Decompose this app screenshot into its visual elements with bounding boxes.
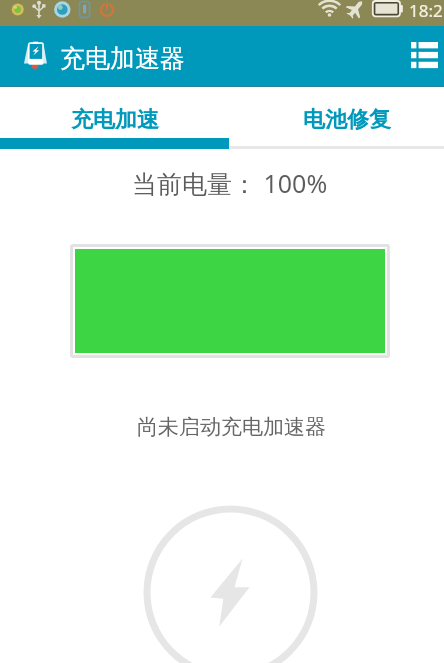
button[interactable]: Menu	[404, 36, 444, 76]
button[interactable]: Start charging booster	[143, 505, 318, 663]
staticText: 充电加速器	[60, 43, 185, 74]
button[interactable]: 充电加速	[0, 87, 222, 149]
staticText: 电池修复	[303, 106, 391, 134]
button[interactable]: 电池修复	[222, 87, 444, 149]
staticText: 充电加速	[71, 106, 159, 134]
other: Charge booster	[21, 39, 48, 70]
staticText: 18:2	[409, 0, 443, 22]
staticText: 尚未启动充电加速器	[137, 414, 326, 440]
staticText: 当前电量： 100%	[132, 166, 328, 200]
